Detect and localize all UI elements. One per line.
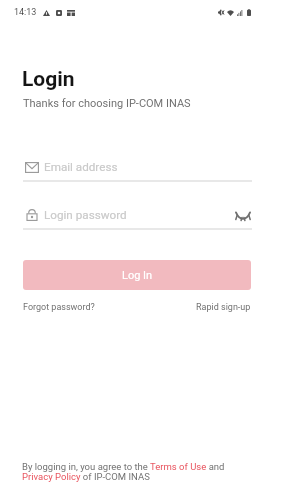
button[interactable]: Show password (235, 211, 251, 220)
button[interactable]: Log In (23, 260, 251, 290)
staticText: Email address (44, 160, 252, 174)
staticText: Thanks for choosing IP-COM INAS (23, 97, 191, 110)
staticText: Log In (122, 269, 153, 282)
button[interactable]: Rapid sign-up (196, 302, 251, 313)
staticText: By logging in, you agree to the Terms of… (22, 461, 225, 483)
button[interactable]: Forgot password? (23, 302, 95, 313)
staticText: 14:13 (14, 7, 37, 18)
staticText: Login (22, 67, 75, 92)
staticText: Login password (44, 208, 236, 222)
